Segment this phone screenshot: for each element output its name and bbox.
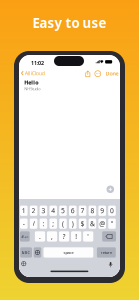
button[interactable]: ; xyxy=(49,218,57,229)
staticText: 1 xyxy=(22,206,26,215)
staticText: ! xyxy=(75,232,77,241)
button[interactable]: 8 xyxy=(89,206,96,216)
staticText: 4 xyxy=(51,206,55,215)
staticText: ; xyxy=(52,219,54,228)
button[interactable]: 5 xyxy=(59,206,67,216)
staticText: Easy to use xyxy=(32,14,106,32)
button[interactable]: $ xyxy=(79,218,86,229)
button[interactable]: ? xyxy=(59,231,69,242)
button[interactable]: ) xyxy=(69,218,77,229)
staticText: " xyxy=(110,219,113,228)
button[interactable]: Share xyxy=(85,70,90,77)
staticText: 7 xyxy=(81,206,85,215)
staticText: , xyxy=(51,232,53,241)
button[interactable]: ' xyxy=(83,231,93,242)
button[interactable]: 9 xyxy=(98,206,106,216)
button[interactable]: space xyxy=(43,247,93,258)
button[interactable]: @ xyxy=(98,218,106,229)
button[interactable]: New note xyxy=(106,185,114,193)
button[interactable]: : xyxy=(40,218,47,229)
staticText: 9 xyxy=(100,206,104,215)
staticText: ? xyxy=(63,232,66,241)
button[interactable]: - xyxy=(20,218,28,229)
button[interactable]: ( xyxy=(59,218,67,229)
button[interactable]: . xyxy=(35,231,45,242)
staticText: return xyxy=(101,250,112,255)
staticText: 2 xyxy=(32,206,36,215)
button[interactable]: " xyxy=(108,218,116,229)
staticText: ( xyxy=(62,219,64,228)
button[interactable]: Delete xyxy=(102,231,116,242)
button[interactable]: 6 xyxy=(69,206,77,216)
button[interactable]: Dictate xyxy=(109,261,112,266)
button[interactable]: 4 xyxy=(49,206,57,216)
button[interactable]: Done xyxy=(104,68,119,79)
button[interactable]: return xyxy=(97,247,116,258)
button[interactable]: Emoji xyxy=(22,261,26,266)
button[interactable]: 3 xyxy=(40,206,47,216)
staticText: #+= xyxy=(21,234,28,239)
staticText: ) xyxy=(72,219,74,228)
staticText: / xyxy=(33,219,35,228)
staticText: . xyxy=(39,232,41,241)
staticText: 0 xyxy=(110,206,114,215)
staticText: ABC xyxy=(22,250,31,255)
staticText: NHStudio xyxy=(24,86,40,91)
button[interactable]: ! xyxy=(71,231,81,242)
button[interactable]: #+= xyxy=(20,231,30,242)
button[interactable]: All iCloud xyxy=(21,68,46,78)
staticText: 8 xyxy=(90,206,94,215)
staticText: 5 xyxy=(61,206,65,215)
button[interactable]: ABC xyxy=(20,247,32,258)
button[interactable]: 7 xyxy=(79,206,86,216)
staticText: 11:02 xyxy=(31,59,44,66)
staticText: $ xyxy=(81,219,85,228)
staticText: Hello xyxy=(24,79,38,86)
staticText: : xyxy=(42,219,44,228)
button[interactable]: Next keyboard xyxy=(34,247,41,258)
staticText: ' xyxy=(87,232,89,241)
button[interactable]: More xyxy=(95,71,101,77)
staticText: & xyxy=(90,219,95,228)
staticText: Done xyxy=(105,70,118,77)
staticText: @ xyxy=(99,219,105,228)
button[interactable]: , xyxy=(47,231,57,242)
button[interactable]: 2 xyxy=(30,206,37,216)
staticText: 6 xyxy=(71,206,75,215)
staticText: 3 xyxy=(41,206,45,215)
staticText: - xyxy=(23,219,25,228)
button[interactable]: 1 xyxy=(20,206,28,216)
button[interactable]: 0 xyxy=(108,206,116,216)
button[interactable]: / xyxy=(30,218,37,229)
staticText: All iCloud xyxy=(25,70,45,77)
staticText: space xyxy=(63,250,73,255)
button[interactable]: & xyxy=(89,218,96,229)
